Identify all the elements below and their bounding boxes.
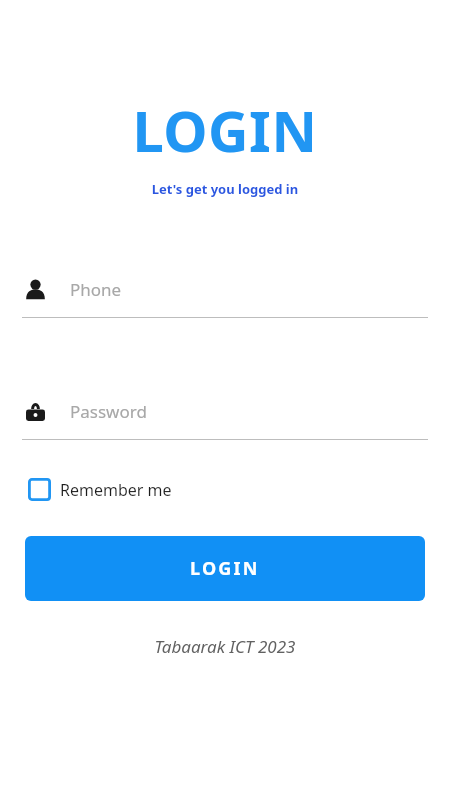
button[interactable]: Password [22,398,428,424]
staticText: Remember me [60,479,172,501]
staticText: LOGIN [190,556,260,581]
other: Password [22,398,48,424]
staticText: LOGIN [0,92,450,168]
button[interactable]: Phone account [22,276,428,302]
staticText: Password [70,400,147,423]
staticText: Phone [70,278,122,301]
other: Phone account [22,276,48,302]
button[interactable]: LOGIN [25,536,425,601]
staticText: Tabaarak ICT 2023 [0,635,450,658]
button[interactable]: Remember me [24,472,176,507]
staticText: Let's get you logged in [0,180,450,198]
